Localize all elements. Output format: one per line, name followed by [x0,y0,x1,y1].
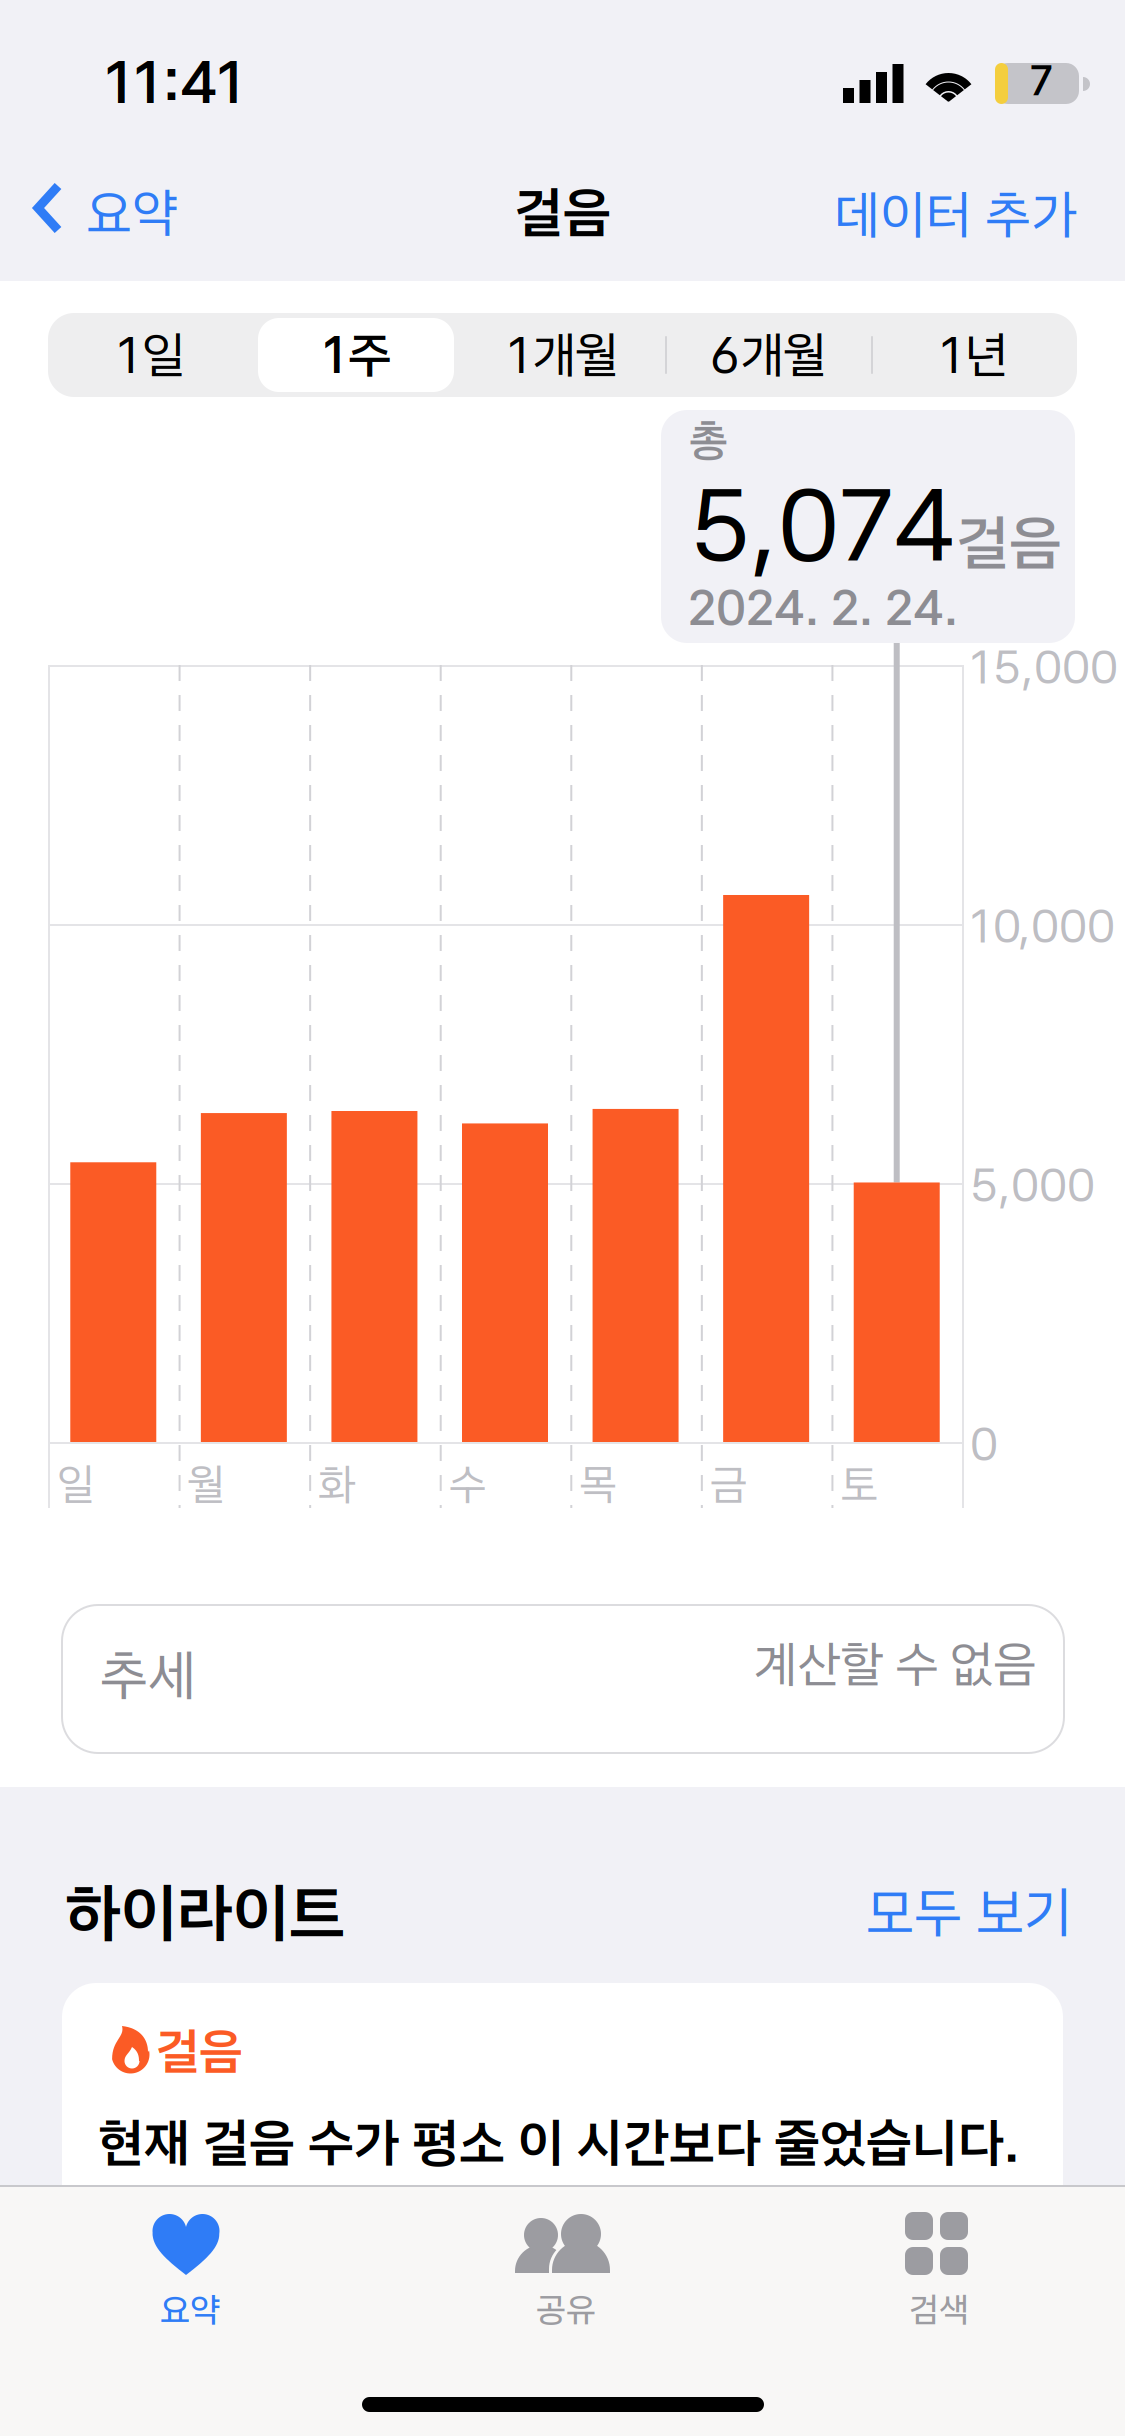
staticText: 데이터 추가 [834,183,1077,247]
staticText: 월 [188,1458,226,1510]
staticText: 걸음 [515,179,611,246]
button[interactable]: 요약 [0,2190,375,2360]
staticText: 1일 [117,325,185,385]
staticText: 0 [970,1416,998,1472]
button[interactable]: 모두 보기 [839,1874,1089,1964]
staticText: 11:41 [105,46,246,118]
staticText: 걸음 [156,2021,242,2081]
staticText: 15,000 [970,639,1118,695]
staticText: 6개월 [709,325,826,385]
button[interactable]: 검색 [750,2190,1125,2360]
staticText: 1주 [323,325,391,385]
staticText: 화 [318,1458,356,1510]
staticText: 토 [840,1458,878,1510]
staticText: 공유 [536,2289,596,2330]
button[interactable]: 6개월 [665,313,871,397]
staticText: 금 [710,1458,748,1510]
staticText: 목 [579,1458,617,1510]
staticText: 수 [449,1458,487,1510]
staticText: 5,074 [690,464,955,585]
button[interactable]: 1일 [48,313,254,397]
button[interactable]: 추세 [62,1605,1064,1753]
staticText: 1년 [940,325,1008,385]
button[interactable]: 데이터 추가 [812,133,1102,281]
staticText: 현재 걸음 수가 평소 이 시간보다 줄었습니다. [98,2111,1019,2175]
staticText: 2024. 2. 24. [688,578,958,637]
staticText: 요약 [86,181,178,245]
staticText: 검색 [909,2289,969,2330]
staticText: 5,000 [970,1157,1095,1213]
button[interactable]: 요약 [0,133,233,281]
staticText: 총 [689,413,728,467]
staticText: 7 [1030,56,1052,105]
button[interactable]: 1주 [254,313,460,397]
button[interactable]: 1개월 [460,313,666,397]
staticText: 하이라이트 [65,1874,345,1952]
staticText: 10,000 [970,898,1115,954]
staticText: 요약 [160,2289,220,2330]
staticText: 계산할 수 없음 [754,1634,1036,1694]
staticText: 모두 보기 [866,1879,1072,1946]
staticText: 1개월 [507,325,618,385]
button[interactable]: 1년 [871,313,1077,397]
staticText: 일 [57,1458,95,1510]
staticText: 추세 [100,1642,196,1709]
button[interactable]: 공유 [375,2190,750,2360]
staticText: 걸음 [956,506,1062,579]
